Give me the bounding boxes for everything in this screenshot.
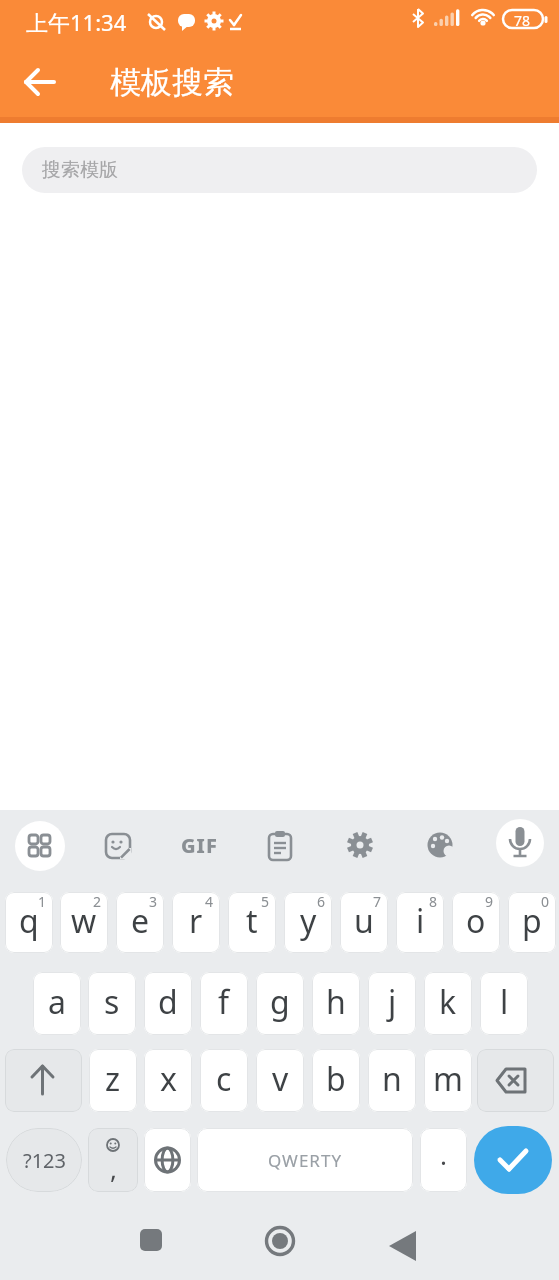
- button[interactable]: f: [200, 972, 248, 1035]
- staticText: 1: [38, 892, 47, 911]
- button[interactable]: b: [312, 1049, 360, 1112]
- staticText: f: [218, 980, 230, 1024]
- button[interactable]: [103, 831, 133, 861]
- staticText: h: [326, 980, 346, 1024]
- button[interactable]: [425, 830, 455, 860]
- button[interactable]: z: [89, 1049, 137, 1112]
- staticText: n: [382, 1057, 402, 1101]
- staticText: d: [158, 980, 178, 1024]
- button[interactable]: q: [5, 892, 53, 953]
- staticText: 8: [429, 892, 438, 911]
- button[interactable]: GIF: [176, 832, 222, 858]
- staticText: ,: [110, 1151, 117, 1186]
- button[interactable]: [265, 830, 295, 862]
- staticText: t: [246, 899, 258, 943]
- staticText: k: [439, 980, 457, 1024]
- button[interactable]: w: [60, 892, 108, 953]
- staticText: e: [131, 899, 150, 943]
- staticText: p: [522, 899, 542, 943]
- button[interactable]: o: [452, 892, 500, 953]
- staticText: i: [416, 899, 425, 943]
- button[interactable]: [496, 819, 544, 867]
- button[interactable]: [257, 1218, 303, 1264]
- button[interactable]: u: [340, 892, 388, 953]
- button[interactable]: ,: [88, 1128, 138, 1192]
- button[interactable]: m: [424, 1049, 472, 1112]
- staticText: 7: [373, 892, 382, 911]
- button[interactable]: x: [144, 1049, 192, 1112]
- button[interactable]: c: [200, 1049, 248, 1112]
- staticText: u: [354, 899, 374, 943]
- button[interactable]: .: [420, 1128, 467, 1192]
- button[interactable]: [128, 1217, 174, 1263]
- staticText: ?123: [23, 1147, 66, 1174]
- staticText: 搜索模版: [42, 158, 118, 182]
- staticText: QWERTY: [268, 1149, 343, 1172]
- staticText: 0: [541, 892, 550, 911]
- button[interactable]: [474, 1126, 552, 1194]
- staticText: a: [48, 980, 66, 1024]
- staticText: 6: [317, 892, 326, 911]
- staticText: w: [71, 899, 97, 943]
- staticText: c: [216, 1057, 232, 1101]
- button[interactable]: k: [424, 972, 472, 1035]
- staticText: 模板搜索: [110, 63, 234, 102]
- staticText: y: [300, 899, 317, 943]
- button[interactable]: [16, 58, 64, 106]
- button[interactable]: i: [396, 892, 444, 953]
- button[interactable]: [144, 1128, 191, 1192]
- staticText: g: [270, 980, 290, 1024]
- staticText: o: [466, 899, 486, 943]
- button[interactable]: n: [368, 1049, 416, 1112]
- staticText: q: [19, 899, 39, 943]
- button[interactable]: h: [312, 972, 360, 1035]
- button[interactable]: l: [480, 972, 528, 1035]
- button[interactable]: v: [256, 1049, 304, 1112]
- staticText: GIF: [181, 832, 218, 858]
- staticText: x: [160, 1057, 177, 1101]
- staticText: 4: [205, 892, 214, 911]
- button[interactable]: g: [256, 972, 304, 1035]
- staticText: 上午11:34: [26, 7, 127, 37]
- staticText: m: [433, 1057, 463, 1101]
- staticText: s: [104, 980, 120, 1024]
- button[interactable]: [345, 830, 375, 860]
- staticText: b: [326, 1057, 346, 1101]
- button[interactable]: y: [284, 892, 332, 953]
- button[interactable]: e: [116, 892, 164, 953]
- staticText: j: [388, 980, 397, 1024]
- staticText: r: [189, 899, 203, 943]
- button[interactable]: 搜索模版: [22, 147, 537, 193]
- button[interactable]: QWERTY: [197, 1128, 413, 1192]
- button[interactable]: [5, 1049, 82, 1112]
- staticText: 78: [508, 11, 536, 29]
- staticText: l: [500, 980, 509, 1024]
- staticText: v: [272, 1057, 289, 1101]
- button[interactable]: a: [33, 972, 81, 1035]
- staticText: 3: [149, 892, 158, 911]
- button[interactable]: j: [368, 972, 416, 1035]
- button[interactable]: ?123: [6, 1128, 82, 1192]
- button[interactable]: s: [88, 972, 136, 1035]
- staticText: 9: [485, 892, 494, 911]
- staticText: 2: [93, 892, 102, 911]
- button[interactable]: p: [508, 892, 556, 953]
- button[interactable]: [15, 821, 65, 871]
- staticText: z: [105, 1057, 121, 1101]
- button[interactable]: r: [172, 892, 220, 953]
- staticText: .: [440, 1137, 447, 1172]
- staticText: 5: [261, 892, 270, 911]
- button[interactable]: d: [144, 972, 192, 1035]
- button[interactable]: [383, 1223, 429, 1269]
- button[interactable]: [477, 1049, 554, 1112]
- button[interactable]: t: [228, 892, 276, 953]
